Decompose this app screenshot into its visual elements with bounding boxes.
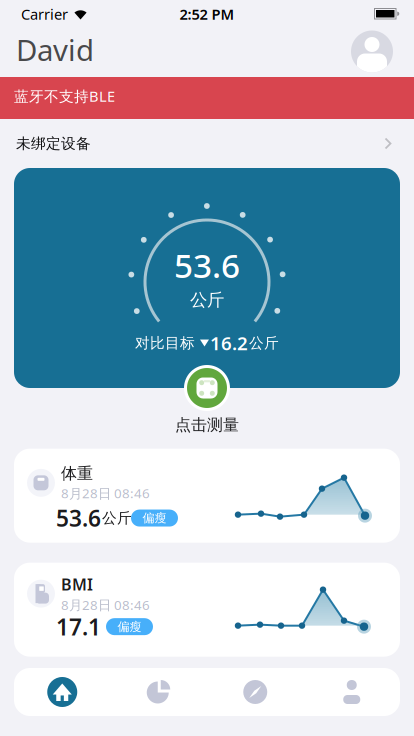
button[interactable]: 测量 <box>184 365 230 411</box>
staticText: 8月28日 08:46 <box>61 484 150 502</box>
button[interactable]: BMI <box>14 563 400 657</box>
button[interactable]: 点击测量 <box>175 415 239 435</box>
staticText: 16.2 <box>210 331 248 355</box>
staticText: 53.6 <box>174 243 240 287</box>
staticText: 53.6 <box>56 503 101 533</box>
staticText: 点击测量 <box>175 415 239 435</box>
staticText: 公斤 <box>102 509 132 527</box>
staticText: 对比目标 <box>135 334 199 352</box>
staticText: 2:52 PM <box>179 4 234 24</box>
staticText: 17.1 <box>56 612 101 642</box>
staticText: 8月28日 08:46 <box>61 596 150 614</box>
staticText: 未绑定设备 <box>16 134 91 152</box>
button[interactable]: 统计 <box>110 668 207 716</box>
staticText: 公斤 <box>249 334 279 352</box>
staticText: 偏瘦 <box>117 619 141 634</box>
staticText: Carrier <box>21 4 68 24</box>
button[interactable]: 未绑定设备 <box>0 119 414 168</box>
staticText: 蓝牙不支持BLE <box>14 86 115 106</box>
button[interactable]: 发现 <box>207 668 303 716</box>
button[interactable]: 体重 <box>14 449 400 543</box>
staticText: BMI <box>61 574 93 595</box>
button[interactable]: Profile <box>351 30 393 72</box>
staticText: 公斤 <box>190 289 224 311</box>
staticText: David <box>16 30 94 69</box>
button[interactable]: 首页 <box>14 668 110 716</box>
staticText: 偏瘦 <box>142 511 166 525</box>
staticText: 体重 <box>61 464 93 483</box>
button[interactable]: 我的 <box>303 668 400 716</box>
